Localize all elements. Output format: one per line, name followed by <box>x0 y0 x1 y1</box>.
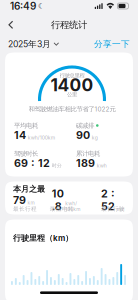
staticText: 最长行驶 <box>101 205 125 213</box>
button[interactable]: Back <box>3 20 19 29</box>
staticText: 2025年3月 <box>8 38 51 49</box>
staticText: 行驶里程（km） <box>13 233 73 243</box>
staticText: 平均电耗 <box>14 121 38 130</box>
staticText: 行驶总里程 <box>59 72 84 79</box>
staticText: 189 <box>76 156 95 169</box>
staticText: 90 <box>76 128 90 141</box>
staticText: min <box>116 206 124 212</box>
staticText: kwh/100km <box>65 200 80 212</box>
staticText: 行程统计 <box>51 19 87 31</box>
staticText: kwh/100km <box>28 134 55 141</box>
staticText: 10.8 <box>52 187 64 213</box>
staticText: km <box>27 200 34 206</box>
button[interactable]: 2025年3月 <box>8 38 59 49</box>
staticText: 本月之最 <box>13 184 45 194</box>
staticText: 最长行程 <box>13 205 37 213</box>
staticText: 分享一下 <box>94 38 130 49</box>
staticText: 16:49 <box>10 0 36 12</box>
staticText: 2 : 52 <box>101 187 115 213</box>
staticText: 最低电耗 <box>50 205 74 213</box>
staticText: 碳减排 <box>76 121 94 130</box>
button[interactable]: 分享一下 <box>94 38 130 49</box>
staticText: kg <box>92 134 98 141</box>
staticText: 和驾驶燃油车相比节省了1022元 <box>28 105 115 113</box>
staticText: kwh <box>97 162 107 169</box>
staticText: ☾ <box>36 2 45 10</box>
staticText: 驾驶时长 <box>14 149 38 158</box>
staticText: 累计电耗 <box>76 149 100 158</box>
staticText: 时分 <box>52 162 62 169</box>
staticText: 79 <box>13 193 26 206</box>
staticText: 1400 <box>50 74 93 95</box>
staticText: 14 <box>14 128 26 141</box>
staticText: 69 : 12 <box>14 156 50 169</box>
staticText: 公里 <box>67 91 77 98</box>
